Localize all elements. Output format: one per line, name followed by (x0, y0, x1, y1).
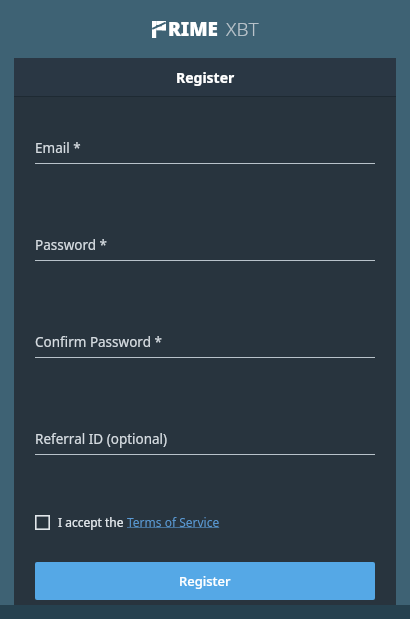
button[interactable]: Referral ID (optional) (35, 430, 375, 455)
staticText: Password * (35, 236, 108, 254)
staticText: Confirm Password * (35, 333, 162, 351)
staticText: RIME (168, 16, 219, 42)
staticText: Register (176, 68, 235, 87)
button[interactable]: Password * (35, 236, 375, 261)
staticText: Email * (35, 139, 81, 157)
staticText: XBT (226, 16, 259, 42)
staticText: I accept the (58, 514, 127, 530)
button[interactable]: Accept terms checkbox (35, 512, 220, 532)
staticText: Register (179, 572, 231, 590)
button[interactable]: Register (35, 562, 375, 600)
other: Accept terms checkbox (35, 515, 50, 530)
staticText: Referral ID (optional) (35, 430, 168, 448)
button[interactable]: Confirm Password * (35, 333, 375, 358)
button[interactable]: Terms of Service (127, 514, 220, 530)
button[interactable]: Email * (35, 139, 375, 164)
staticText: Terms of Service (127, 514, 220, 530)
